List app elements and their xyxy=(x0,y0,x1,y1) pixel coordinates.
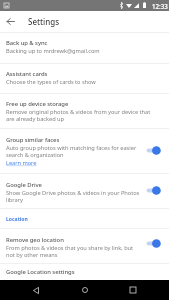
button[interactable]: Toggle xyxy=(145,144,163,157)
staticText: From photos & videos that you share by l… xyxy=(6,244,137,259)
staticText: Free up device storage xyxy=(6,100,69,108)
button[interactable]: Group similar faces xyxy=(0,129,169,174)
button[interactable]: Toggle xyxy=(145,237,163,250)
staticText: Google Location settings xyxy=(6,268,75,276)
staticText: Auto group photos with matching faces fo… xyxy=(6,144,137,159)
button[interactable]: Google Location settings xyxy=(0,263,169,280)
button[interactable]: Back up & sync xyxy=(0,32,169,63)
staticText: Assistant cards xyxy=(6,70,48,78)
staticText: 12:33 xyxy=(152,2,168,10)
button[interactable]: Toggle xyxy=(145,184,163,197)
staticText: Group similar faces xyxy=(6,136,60,144)
button[interactable]: Recent apps xyxy=(121,280,145,300)
staticText: Learn more xyxy=(6,159,37,167)
button[interactable]: Home xyxy=(73,280,97,300)
staticText: Show Google Drive photos & videos in you… xyxy=(6,189,148,204)
staticText: Choose the types of cards to show xyxy=(6,78,96,86)
staticText: Settings xyxy=(28,16,60,27)
staticText: Google Drive xyxy=(6,181,42,189)
button[interactable]: Back xyxy=(24,280,48,300)
button[interactable]: Back xyxy=(0,11,21,32)
staticText: Backing up to mrdrewk@gmail.com xyxy=(6,47,100,55)
staticText: Remove original photos & videos from you… xyxy=(6,108,156,123)
button[interactable]: Assistant cards xyxy=(0,63,169,93)
staticText: Remove geo location xyxy=(6,236,64,244)
button[interactable]: Remove geo location xyxy=(0,229,169,264)
button[interactable]: Google Drive xyxy=(0,174,169,209)
staticText: Location xyxy=(6,216,28,223)
button[interactable]: Free up device storage xyxy=(0,93,169,129)
staticText: Back up & sync xyxy=(6,39,48,47)
